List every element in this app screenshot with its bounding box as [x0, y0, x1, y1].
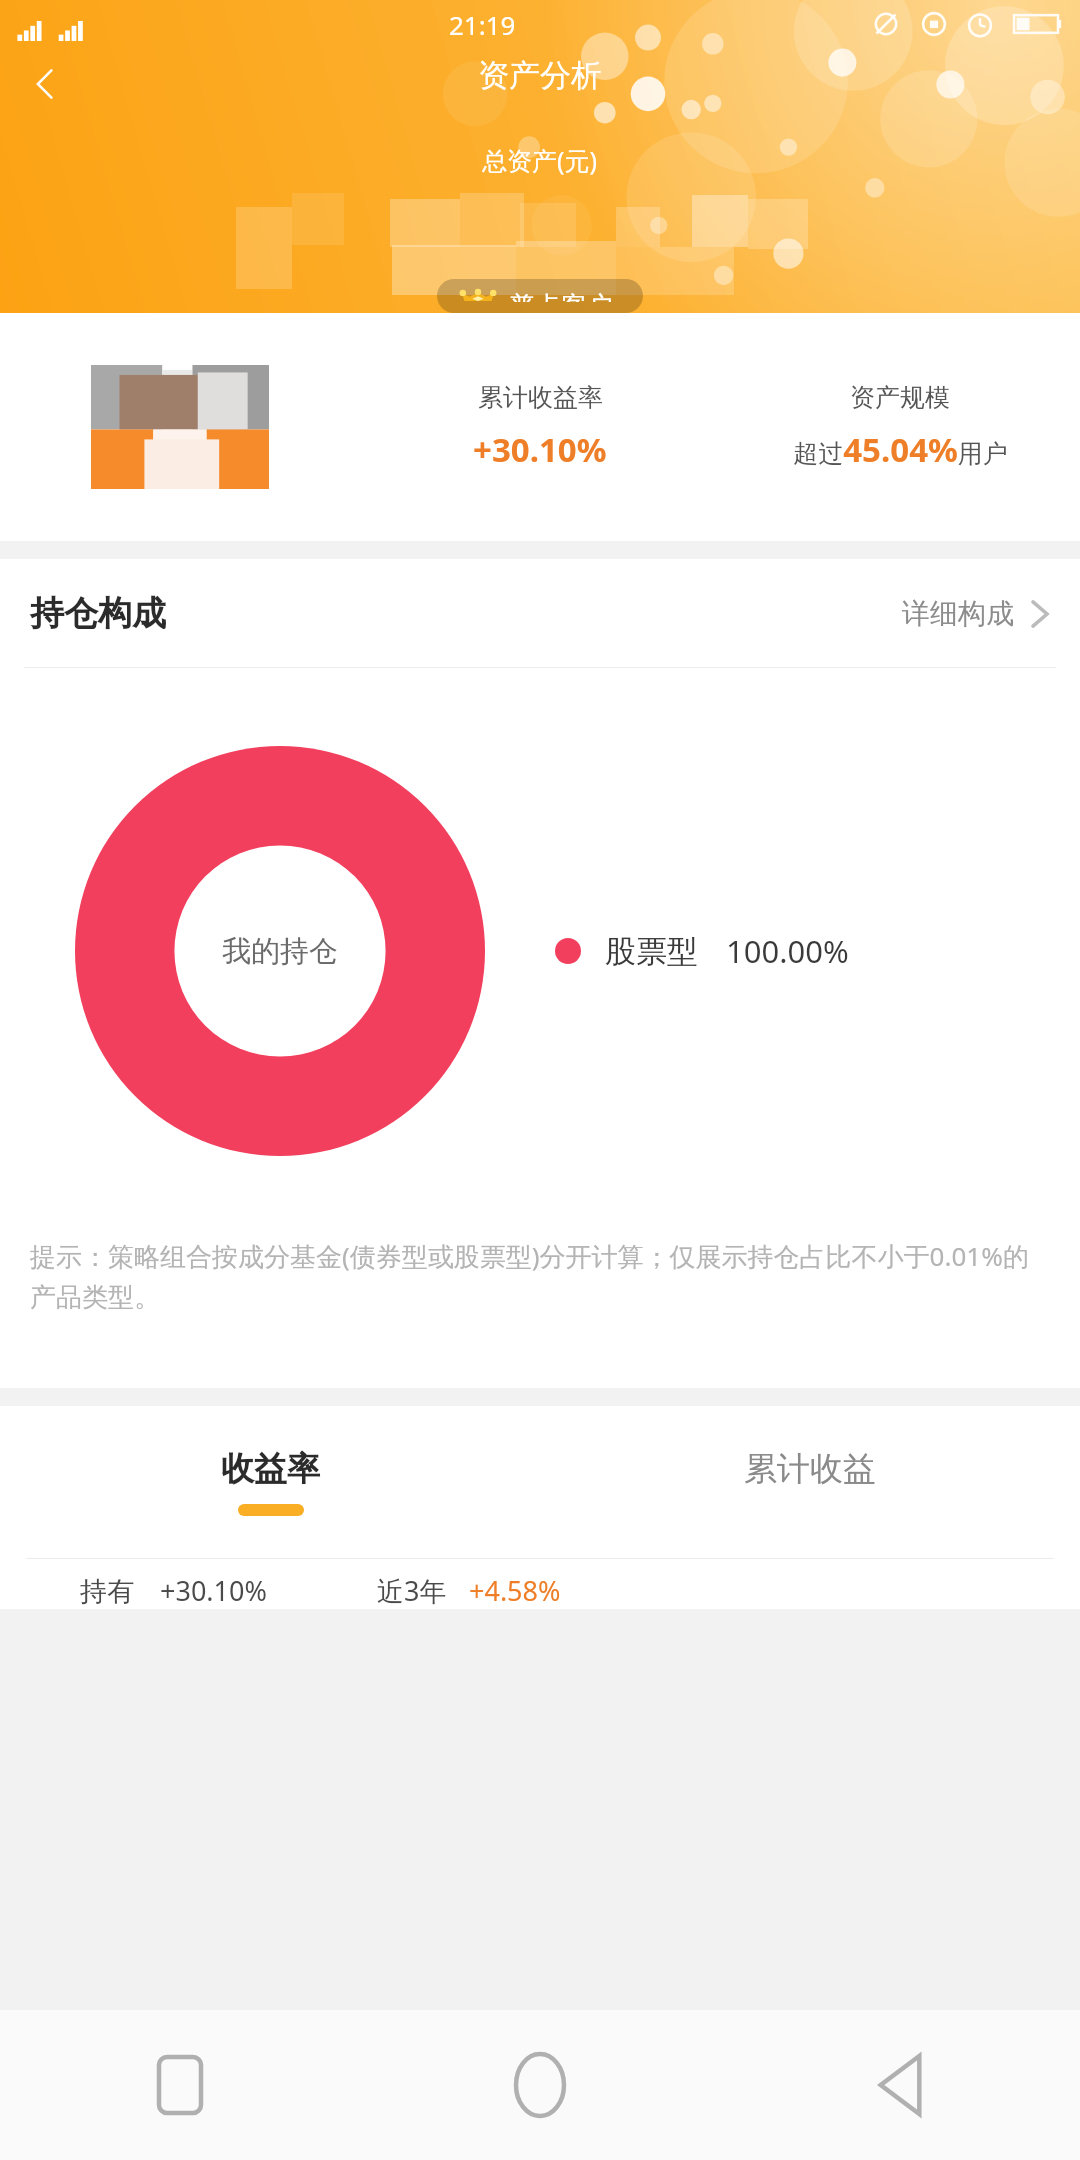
staticText: 持仓构成: [30, 592, 166, 635]
button[interactable]: 累计收益: [540, 1406, 1080, 1558]
button[interactable]: 详细构成: [902, 596, 1050, 631]
staticText: 超过45.04%用户: [793, 427, 1008, 472]
staticText: 累计收益率: [478, 382, 603, 413]
staticText: 收益率: [221, 1448, 320, 1490]
staticText: 总资产(元): [482, 143, 598, 177]
button[interactable]: Back: [720, 2010, 1080, 2160]
staticText: +4.58%: [469, 1572, 561, 1609]
staticText: +30.10%: [473, 427, 607, 472]
staticText: 我的持仓: [222, 933, 338, 970]
button[interactable]: Recent apps: [0, 2010, 360, 2160]
staticText: 21:19: [449, 7, 516, 42]
staticText: +30.10%: [160, 1572, 267, 1609]
staticText: 持有: [80, 1575, 134, 1609]
staticText: 详细构成: [902, 596, 1014, 631]
staticText: 提示：策略组合按成分基金(债券型或股票型)分开计算；仅展示持仓占比不小于0.01…: [30, 1238, 1054, 1314]
staticText: 累计收益: [744, 1448, 876, 1490]
button[interactable]: 普卡客户: [437, 279, 643, 313]
button[interactable]: Home: [360, 2010, 720, 2160]
staticText: 资产规模: [850, 382, 950, 413]
button[interactable]: 收益率: [0, 1406, 540, 1558]
staticText: +0.00: [139, 428, 222, 472]
staticText: 近3年: [377, 1572, 447, 1609]
staticText: 累计收益(元): [110, 382, 251, 416]
staticText: 100.00%: [726, 930, 849, 972]
staticText: 普卡客户: [509, 290, 613, 302]
staticText: 资产分析: [478, 56, 602, 95]
staticText: 股票型: [605, 932, 698, 971]
button[interactable]: Back: [10, 48, 82, 120]
